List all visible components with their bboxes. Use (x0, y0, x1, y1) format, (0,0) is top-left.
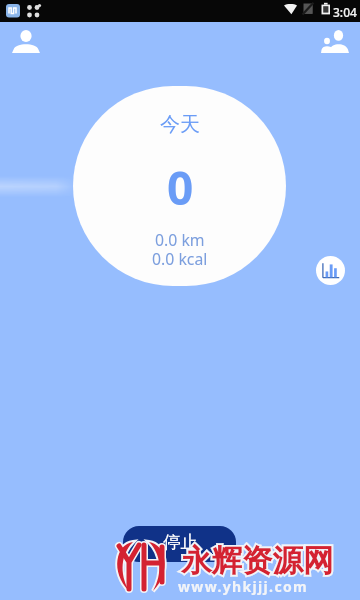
staticText: 永辉资源网 (181, 542, 334, 580)
button[interactable]: Profile (6, 22, 46, 60)
staticText: 3:04 (333, 4, 357, 20)
button[interactable]: Statistics (316, 256, 345, 285)
button[interactable]: 停止 (123, 526, 236, 562)
staticText: 0.0 km (155, 229, 205, 251)
staticText: 停止 (163, 531, 198, 553)
staticText: www.yhkjjj.com (178, 577, 309, 596)
staticText: 永辉资源网 (181, 542, 334, 580)
staticText: 0.0 kcal (152, 248, 208, 270)
button[interactable]: 今天 (73, 86, 286, 286)
staticText: 今天 (160, 112, 200, 137)
button[interactable]: Friends (315, 22, 355, 60)
staticText: 0 (167, 156, 194, 219)
